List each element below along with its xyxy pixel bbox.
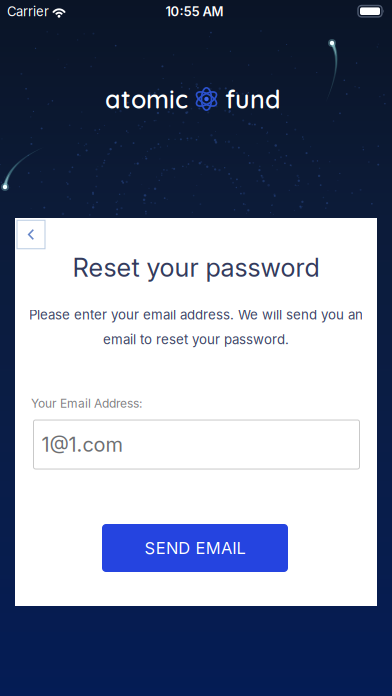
staticText: Reset your password xyxy=(72,252,319,283)
staticText: atomic xyxy=(105,83,188,115)
staticText: Your Email Address: xyxy=(31,396,142,411)
staticText: email to reset your password. xyxy=(103,331,289,347)
staticText: 10:55 AM xyxy=(165,4,223,19)
button[interactable]: 1@1.com xyxy=(33,420,359,469)
staticText: SEND EMAIL xyxy=(145,538,245,558)
staticText: fund xyxy=(225,83,281,115)
button[interactable]: SEND EMAIL xyxy=(102,524,288,572)
staticText: Carrier xyxy=(7,4,49,19)
button[interactable] xyxy=(17,220,45,249)
staticText: Please enter your email address. We will… xyxy=(29,307,363,323)
staticText: 1@1.com xyxy=(41,432,122,457)
